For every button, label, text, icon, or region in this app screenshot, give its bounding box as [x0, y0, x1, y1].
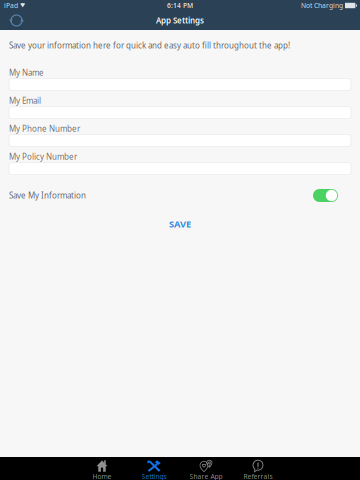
button[interactable]: Share App	[180, 457, 232, 480]
staticText: My Policy Number	[9, 151, 77, 162]
staticText: 6:14 PM	[167, 1, 193, 10]
staticText: My Email	[9, 95, 41, 106]
staticText: My Phone Number	[9, 123, 80, 134]
button[interactable]: Save My Information	[313, 189, 351, 202]
staticText: Referrals	[243, 472, 272, 480]
button[interactable]: Home	[76, 457, 128, 480]
staticText: iPad	[4, 1, 18, 10]
staticText: Not Charging	[301, 1, 343, 10]
staticText: Settings	[141, 472, 166, 480]
staticText: Save your information here for quick and…	[9, 40, 290, 51]
staticText: Share App	[189, 472, 222, 480]
staticText: Save My Information	[9, 190, 86, 201]
staticText: SAVE	[169, 218, 191, 230]
button[interactable]: Settings	[128, 457, 180, 480]
button[interactable]: Sync	[0, 11, 29, 30]
staticText: My Name	[9, 67, 44, 78]
button[interactable]: SAVE	[9, 216, 351, 232]
staticText: Home	[92, 472, 111, 480]
button[interactable]: Referrals	[232, 457, 284, 480]
staticText: App Settings	[156, 15, 204, 26]
